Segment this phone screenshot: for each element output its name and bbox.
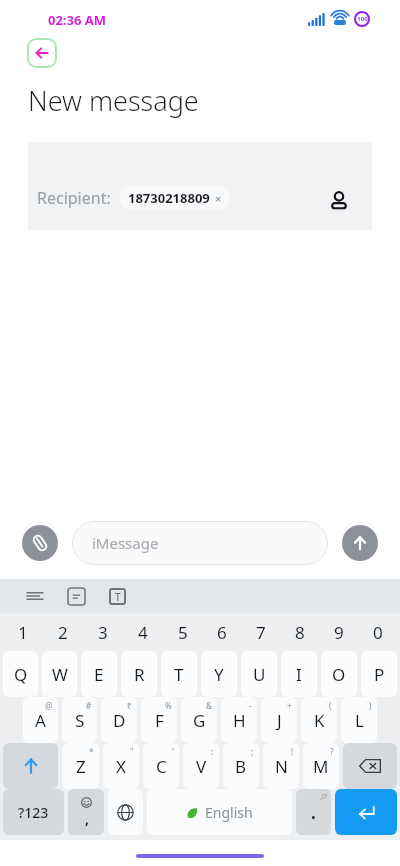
staticText: 1 [18, 621, 28, 644]
button[interactable]: Clipboard [63, 583, 89, 609]
staticText: U [253, 663, 266, 686]
button[interactable]: Recipient: [28, 142, 372, 230]
staticText: R [134, 663, 145, 686]
staticText: X [116, 755, 126, 778]
staticText: T [115, 590, 121, 604]
button[interactable]: 18730218809 [120, 186, 230, 210]
button[interactable]: Choose contact [326, 188, 352, 214]
staticText: D [113, 709, 126, 732]
button[interactable]: X [103, 743, 139, 789]
staticText: × [215, 191, 222, 206]
staticText: New message [28, 82, 199, 119]
button[interactable]: M [303, 743, 339, 789]
staticText: ; [251, 746, 254, 757]
button[interactable]: 8 [280, 613, 319, 651]
staticText: 0 [373, 621, 383, 644]
button[interactable]: 9 [319, 613, 358, 651]
staticText: 4 [138, 621, 148, 644]
button[interactable]: H [221, 697, 257, 743]
staticText: - [249, 700, 252, 711]
button[interactable]: J [261, 697, 297, 743]
button[interactable]: Backspace [343, 743, 397, 789]
staticText: : [211, 746, 214, 757]
button[interactable]: 6 [202, 613, 241, 651]
staticText: . [311, 801, 316, 824]
button[interactable]: V [183, 743, 219, 789]
staticText: O [332, 663, 346, 686]
staticText: J [277, 709, 282, 732]
staticText: 6 [217, 621, 227, 644]
button[interactable]: iMessage [72, 521, 328, 565]
staticText: A [35, 709, 46, 732]
button[interactable]: Z [62, 743, 99, 789]
button[interactable]: Attach [22, 525, 58, 561]
button[interactable]: U [241, 651, 277, 697]
staticText: ? [330, 746, 334, 757]
button[interactable]: Q [3, 651, 38, 697]
staticText: ! [291, 746, 294, 757]
staticText: 7 [256, 621, 266, 644]
button[interactable]: P [361, 651, 397, 697]
button[interactable]: K [301, 697, 337, 743]
staticText: S [75, 709, 85, 732]
button[interactable]: 7 [241, 613, 280, 651]
button[interactable]: L [341, 697, 377, 743]
staticText: G [193, 709, 206, 732]
button[interactable]: W [42, 651, 77, 697]
staticText: I [296, 663, 302, 686]
staticText: English [205, 803, 253, 822]
staticText: C [156, 755, 167, 778]
staticText: 5 [178, 621, 188, 644]
button[interactable]: 5 [163, 613, 202, 651]
staticText: 8 [295, 621, 305, 644]
button[interactable]: Menu [22, 583, 48, 609]
staticText: 3 [98, 621, 108, 644]
button[interactable]: B [223, 743, 259, 789]
button[interactable]: Send [342, 525, 378, 561]
button[interactable]: 2 [43, 613, 83, 651]
button[interactable]: N [263, 743, 299, 789]
button[interactable]: A [23, 697, 58, 743]
staticText: ₹ [127, 700, 132, 711]
button[interactable]: Text formatting [104, 583, 130, 609]
button[interactable]: Space [147, 789, 292, 835]
button[interactable]: Change language [108, 789, 143, 835]
button[interactable]: I [281, 651, 317, 697]
button[interactable]: Enter [335, 789, 397, 835]
staticText: P [374, 663, 385, 686]
button[interactable]: Y [201, 651, 237, 697]
staticText: Q [14, 663, 28, 686]
staticText: 100 [357, 15, 368, 23]
staticText: Recipient: [37, 187, 111, 209]
staticText: 02:36 AM [48, 11, 107, 29]
button[interactable]: Shift [3, 743, 58, 789]
button[interactable]: Back [27, 38, 57, 68]
button[interactable]: O [321, 651, 357, 697]
staticText: H [233, 709, 246, 732]
staticText: iMessage [92, 533, 159, 553]
button[interactable]: 4 [123, 613, 163, 651]
staticText: F [155, 709, 164, 732]
button[interactable]: 0 [358, 613, 397, 651]
button[interactable]: D [101, 697, 137, 743]
button[interactable]: . [296, 789, 331, 835]
staticText: ,!? [320, 792, 327, 802]
button[interactable]: Emoji and comma [68, 789, 104, 835]
staticText: " [130, 746, 134, 757]
staticText: V [196, 755, 207, 778]
button[interactable]: G [181, 697, 217, 743]
staticText: , [85, 809, 89, 828]
button[interactable]: 3 [83, 613, 123, 651]
button[interactable]: E [81, 651, 117, 697]
button[interactable]: F [141, 697, 177, 743]
button[interactable]: 1 [3, 613, 43, 651]
button[interactable]: S [62, 697, 97, 743]
staticText: 2 [58, 621, 68, 644]
button[interactable]: C [143, 743, 179, 789]
button[interactable]: R [121, 651, 157, 697]
button[interactable]: T [161, 651, 197, 697]
staticText: % [165, 700, 172, 711]
staticText: 9 [334, 621, 344, 644]
button[interactable]: ?123 [3, 789, 64, 835]
staticText: T [174, 663, 184, 686]
